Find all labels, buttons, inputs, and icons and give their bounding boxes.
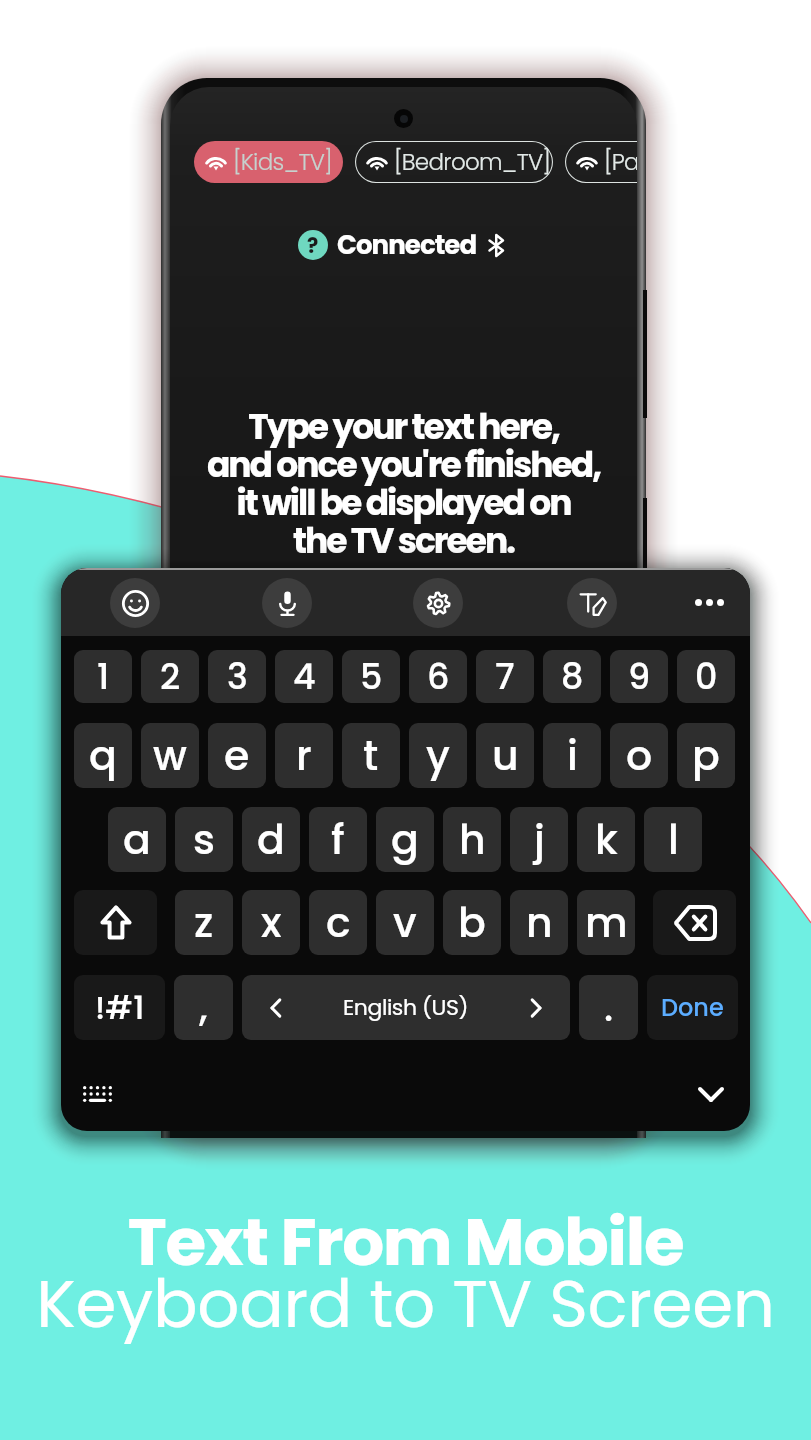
button[interactable]: [Bedroom_TV]	[355, 141, 553, 183]
button[interactable]: Settings	[413, 578, 463, 628]
button[interactable]: 3	[208, 650, 266, 703]
button[interactable]: g	[376, 807, 434, 872]
button[interactable]: n	[510, 890, 568, 955]
staticText: k	[595, 811, 618, 868]
button[interactable]: 5	[342, 650, 400, 703]
staticText: l	[668, 811, 679, 868]
staticText: 4	[293, 652, 316, 701]
button[interactable]: .	[579, 975, 638, 1040]
staticText: [Parents_TV]	[604, 146, 637, 178]
button[interactable]: 6	[409, 650, 467, 703]
button[interactable]: d	[242, 807, 300, 872]
staticText: Done	[661, 991, 724, 1025]
staticText: t	[363, 727, 379, 784]
staticText: e	[224, 727, 250, 784]
staticText: q	[89, 727, 117, 784]
staticText: Type your text here, and once you're fin…	[170, 403, 637, 565]
button[interactable]: z	[175, 890, 233, 955]
button[interactable]: c	[309, 890, 367, 955]
staticText: Text From Mobile	[0, 1196, 811, 1288]
staticText: 9	[628, 652, 651, 701]
staticText: y	[426, 727, 450, 784]
staticText: w	[153, 727, 187, 784]
staticText: .	[604, 981, 614, 1034]
button[interactable]: h	[443, 807, 501, 872]
button[interactable]: 8	[543, 650, 601, 703]
staticText: [Bedroom_TV]	[394, 146, 551, 178]
button[interactable]: y	[409, 723, 467, 788]
staticText: o	[626, 727, 653, 784]
button[interactable]: Emoji	[110, 578, 160, 628]
button[interactable]: w	[141, 723, 199, 788]
staticText: a	[123, 811, 151, 868]
button[interactable]: l	[644, 807, 702, 872]
button[interactable]: 1	[74, 650, 132, 703]
staticText: d	[257, 811, 285, 868]
staticText: 8	[561, 652, 584, 701]
staticText: b	[458, 894, 486, 951]
button[interactable]: 2	[141, 650, 199, 703]
button[interactable]: b	[443, 890, 501, 955]
staticText: !#1	[95, 985, 145, 1030]
staticText: ?	[307, 231, 319, 260]
staticText: u	[492, 727, 519, 784]
button[interactable]: 7	[476, 650, 534, 703]
staticText: f	[331, 811, 345, 868]
staticText: j	[534, 811, 545, 868]
staticText: s	[193, 811, 215, 868]
staticText: g	[391, 811, 419, 868]
staticText: 7	[495, 652, 515, 701]
button[interactable]: More options	[672, 568, 746, 636]
button[interactable]: x	[242, 890, 300, 955]
staticText: x	[261, 894, 282, 951]
button[interactable]: u	[476, 723, 534, 788]
button[interactable]: 4	[275, 650, 333, 703]
button[interactable]: 9	[610, 650, 668, 703]
button[interactable]: e	[208, 723, 266, 788]
button[interactable]: ,	[174, 975, 233, 1040]
staticText: r	[296, 727, 312, 784]
staticText: 5	[360, 652, 383, 701]
button[interactable]: s	[175, 807, 233, 872]
staticText: English (US)	[343, 992, 468, 1023]
staticText: 1	[97, 652, 110, 701]
button[interactable]: i	[543, 723, 601, 788]
staticText: n	[526, 894, 553, 951]
button[interactable]: Done	[647, 975, 738, 1040]
staticText: i	[567, 727, 578, 784]
staticText: Keyboard to TV Screen	[0, 1258, 811, 1350]
staticText: ,	[199, 981, 208, 1034]
button[interactable]: r	[275, 723, 333, 788]
button[interactable]: m	[577, 890, 635, 955]
button[interactable]: Handwriting	[567, 578, 617, 628]
staticText: 6	[427, 652, 450, 701]
staticText: m	[585, 894, 628, 951]
staticText: 3	[227, 652, 248, 701]
button[interactable]: f	[309, 807, 367, 872]
button[interactable]: t	[342, 723, 400, 788]
button[interactable]: a	[108, 807, 166, 872]
button[interactable]: [Parents_TV]	[565, 141, 637, 183]
button[interactable]: j	[510, 807, 568, 872]
button[interactable]: v	[376, 890, 434, 955]
button[interactable]: Shift	[74, 890, 157, 955]
staticText: 2	[160, 652, 181, 701]
button[interactable]: Backspace	[653, 890, 736, 955]
button[interactable]: o	[610, 723, 668, 788]
button[interactable]: p	[677, 723, 735, 788]
button[interactable]: 0	[677, 650, 735, 703]
staticText: h	[459, 811, 486, 868]
button[interactable]: k	[577, 807, 635, 872]
button[interactable]: q	[74, 723, 132, 788]
button[interactable]: !#1	[74, 975, 165, 1040]
staticText: p	[692, 727, 720, 784]
button[interactable]: Keyboard layout	[72, 1069, 122, 1119]
staticText: z	[194, 894, 214, 951]
staticText: Connected	[337, 227, 477, 263]
button[interactable]: Voice input	[262, 578, 312, 628]
staticText: [Kids_TV]	[233, 146, 332, 178]
button[interactable]: Hide keyboard	[686, 1069, 736, 1119]
button[interactable]: [Kids_TV]	[194, 141, 343, 183]
button[interactable]: English (US)	[242, 975, 570, 1040]
staticText: 0	[695, 652, 718, 701]
